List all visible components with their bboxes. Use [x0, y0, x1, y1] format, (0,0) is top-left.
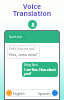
- staticText: I am fine. How about you?: [24, 68, 56, 76]
- button[interactable]: English: [6, 90, 32, 96]
- button[interactable]: Estoy bien: [24, 63, 56, 76]
- button[interactable]: Spanish: [32, 90, 58, 96]
- button[interactable]: Speak now: [9, 35, 23, 39]
- button[interactable]: Profile: [28, 20, 37, 29]
- button[interactable]: Hello, how are you?: [9, 47, 38, 57]
- staticText: Hello, how are you?: [9, 47, 36, 51]
- staticText: Voice Translation: [0, 2, 64, 18]
- staticText: Speak now: [9, 35, 23, 39]
- staticText: Hola, como estas?: [9, 52, 38, 57]
- staticText: Spanish: [38, 91, 51, 96]
- staticText: English: [13, 91, 25, 96]
- staticText: Estoy bien: [24, 63, 38, 67]
